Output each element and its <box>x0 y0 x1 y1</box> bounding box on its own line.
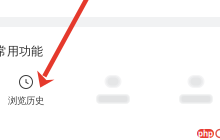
staticText: 常用功能 <box>0 44 43 59</box>
button[interactable]: 快捷入口 <box>81 75 145 104</box>
button[interactable]: 快捷入口 <box>164 75 220 104</box>
button[interactable]: 浏览历史 <box>0 75 58 106</box>
staticText: php <box>198 128 213 139</box>
staticText: 浏览历史 <box>8 95 44 106</box>
